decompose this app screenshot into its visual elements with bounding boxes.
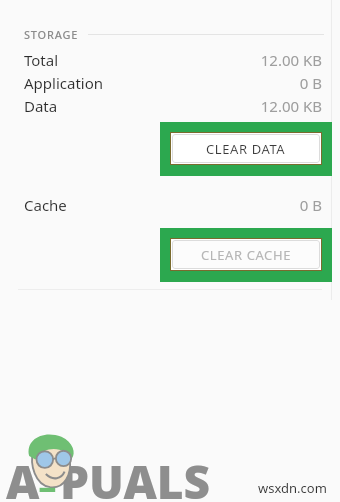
button[interactable]: Total [24, 50, 322, 70]
staticText: CLEAR CACHE [201, 246, 291, 264]
staticText: 0 B [299, 195, 322, 215]
staticText: A [6, 450, 40, 502]
staticText: wsxdn.com [258, 479, 327, 497]
staticText: 12.00 KB [260, 50, 322, 70]
button[interactable]: Data [24, 96, 322, 116]
staticText: Application [24, 73, 104, 93]
staticText: PUALS [60, 450, 211, 502]
button[interactable]: CLEAR CACHE [172, 240, 320, 269]
staticText: Data [24, 96, 58, 116]
button[interactable]: Cache [24, 195, 322, 215]
staticText: Total [24, 50, 59, 70]
staticText: 0 B [299, 73, 322, 93]
other: Appuals mascot [24, 432, 76, 492]
staticText: CLEAR DATA [206, 140, 286, 158]
button[interactable]: CLEAR DATA [172, 134, 320, 163]
staticText: STORAGE [24, 27, 79, 42]
staticText: Cache [24, 195, 67, 215]
staticText: 12.00 KB [260, 96, 322, 116]
button[interactable]: Application [24, 73, 322, 93]
